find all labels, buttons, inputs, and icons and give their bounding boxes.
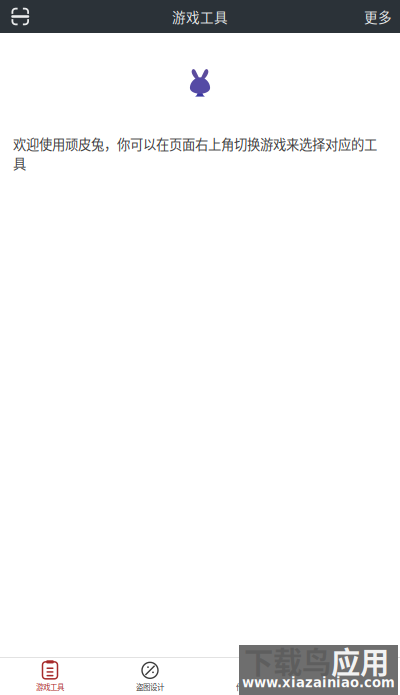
staticText: 我的 bbox=[343, 679, 357, 690]
staticText: 作品鉴定 bbox=[236, 681, 264, 692]
staticText: 更多 bbox=[364, 7, 392, 26]
button[interactable]: 盗图设计 bbox=[100, 658, 200, 695]
staticText: 下载鸟 bbox=[244, 639, 331, 682]
staticText: 游戏工具 bbox=[172, 7, 228, 26]
staticText: 盗图设计 bbox=[136, 681, 164, 692]
staticText: 游戏工具 bbox=[36, 681, 64, 692]
staticText: www.xiazainiao.com bbox=[242, 675, 395, 690]
button[interactable]: 游戏工具 bbox=[0, 658, 100, 695]
staticText: 欢迎使用顽皮兔，你可以在页面右上角切换游戏来选择对应的工具 bbox=[13, 134, 377, 173]
staticText: 应用 bbox=[331, 639, 389, 682]
button[interactable]: 作品鉴定 bbox=[200, 658, 300, 695]
button[interactable]: 我的 bbox=[300, 658, 400, 695]
button[interactable]: 更多 bbox=[354, 2, 400, 31]
button[interactable]: Scan bbox=[0, 3, 39, 30]
